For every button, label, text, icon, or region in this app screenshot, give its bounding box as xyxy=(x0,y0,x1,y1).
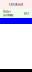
staticText: Order summary xyxy=(3,10,13,17)
staticText: Checkout xyxy=(9,3,23,6)
staticText: Edit xyxy=(24,12,29,15)
